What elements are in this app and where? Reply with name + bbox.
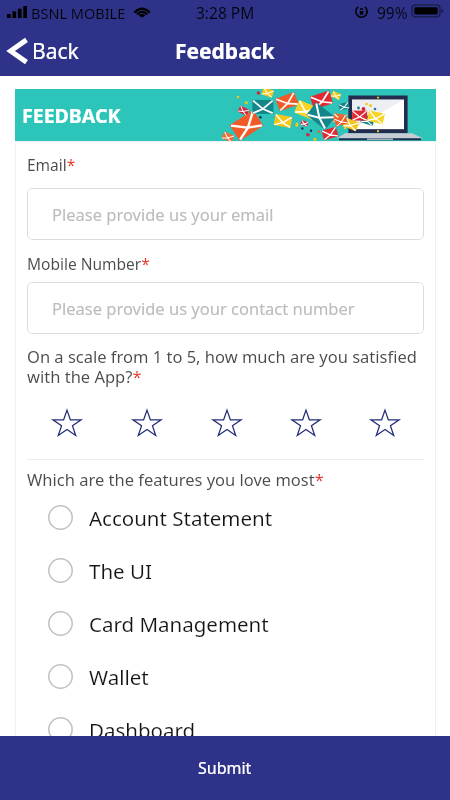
staticText: Please provide us your email bbox=[52, 203, 274, 225]
staticText: Feedback bbox=[175, 37, 275, 66]
staticText: Submit bbox=[198, 757, 252, 779]
staticText: The UI bbox=[89, 557, 152, 585]
button[interactable]: Rate 2 stars bbox=[107, 407, 187, 439]
staticText: Back bbox=[32, 37, 79, 66]
staticText: 3:28 PM bbox=[196, 2, 255, 23]
staticText: 99% bbox=[377, 2, 408, 23]
button[interactable]: Rate 3 stars bbox=[187, 407, 266, 439]
staticText: Mobile Number* bbox=[27, 253, 150, 274]
button[interactable]: Account Statement bbox=[27, 491, 424, 544]
staticText: Which are the features you love most* bbox=[27, 468, 324, 490]
staticText: FEEDBACK bbox=[22, 102, 121, 129]
button[interactable]: Rate 1 stars bbox=[27, 407, 107, 439]
button[interactable]: Dashboard bbox=[27, 703, 424, 736]
button[interactable]: Rate 5 stars bbox=[345, 407, 424, 439]
button[interactable]: Rate 4 stars bbox=[266, 407, 345, 439]
staticText: Card Management bbox=[89, 610, 269, 638]
button[interactable]: Card Management bbox=[27, 597, 424, 650]
button[interactable]: Please provide us your email bbox=[27, 188, 424, 240]
staticText: BSNL MOBILE bbox=[31, 3, 126, 23]
other: Back bbox=[8, 36, 30, 66]
staticText: Please provide us your contact number bbox=[52, 297, 355, 319]
staticText: Wallet bbox=[89, 663, 149, 691]
button[interactable]: Please provide us your contact number bbox=[27, 282, 424, 334]
button[interactable]: Back bbox=[8, 36, 87, 66]
staticText: Account Statement bbox=[89, 504, 273, 532]
button[interactable]: Submit bbox=[0, 736, 450, 800]
staticText: Email* bbox=[27, 154, 76, 175]
other: Rotation lock bbox=[355, 5, 368, 18]
staticText: On a scale from 1 to 5, how much are you… bbox=[27, 345, 424, 388]
button[interactable]: Wallet bbox=[27, 650, 424, 703]
button[interactable]: The UI bbox=[27, 544, 424, 597]
staticText: Dashboard bbox=[89, 716, 196, 736]
